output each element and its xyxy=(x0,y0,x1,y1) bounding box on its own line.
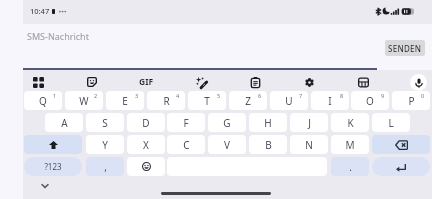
staticText: X xyxy=(143,138,149,152)
staticText: E xyxy=(122,94,128,108)
button[interactable]: A xyxy=(45,113,83,132)
staticText: 3 xyxy=(135,92,139,99)
staticText: C xyxy=(183,138,190,152)
button[interactable]: E xyxy=(106,91,144,110)
button[interactable]: D xyxy=(127,113,165,132)
staticText: 8 xyxy=(340,92,344,99)
button[interactable]: T xyxy=(188,91,226,110)
staticText: 0 xyxy=(421,92,425,99)
staticText: 7 xyxy=(299,92,303,99)
button[interactable]: P xyxy=(392,91,430,110)
staticText: Z xyxy=(245,94,251,108)
staticText: L xyxy=(388,116,394,130)
button[interactable]: AI writing help xyxy=(190,71,212,93)
button[interactable]: K xyxy=(331,113,369,132)
button[interactable]: W xyxy=(65,91,103,110)
staticText: V xyxy=(224,138,230,152)
button[interactable]: Shift xyxy=(24,135,82,154)
staticText: 5 xyxy=(217,92,221,99)
button[interactable]: O xyxy=(351,91,389,110)
button[interactable]: J xyxy=(290,113,328,132)
button[interactable]: Voice input xyxy=(410,74,427,91)
staticText: I xyxy=(328,94,332,108)
button[interactable]: L xyxy=(372,113,410,132)
staticText: A xyxy=(61,116,68,130)
button[interactable]: F xyxy=(167,113,205,132)
staticText: R xyxy=(163,94,170,108)
button[interactable]: Settings xyxy=(298,71,320,93)
staticText: J xyxy=(308,116,311,130)
staticText: D xyxy=(142,116,150,130)
button[interactable]: Comma xyxy=(86,157,124,176)
button[interactable]: Enter xyxy=(372,157,430,176)
staticText: U xyxy=(285,94,293,108)
button[interactable]: Y xyxy=(86,135,124,154)
button[interactable]: N xyxy=(290,135,328,154)
staticText: 9 xyxy=(381,92,385,99)
button[interactable]: X xyxy=(127,135,165,154)
button[interactable]: Period xyxy=(331,157,369,176)
button[interactable]: Backspace xyxy=(372,135,430,154)
staticText: S xyxy=(102,116,108,130)
button[interactable]: C xyxy=(167,135,205,154)
staticText: Y xyxy=(102,138,108,152)
staticText: Q xyxy=(39,94,47,108)
button[interactable]: V xyxy=(208,135,246,154)
staticText: M xyxy=(345,138,355,152)
staticText: H xyxy=(264,116,272,130)
staticText: B xyxy=(265,138,272,152)
button[interactable]: Apps xyxy=(27,71,49,93)
staticText: O xyxy=(366,94,374,108)
button[interactable]: Q xyxy=(24,91,62,110)
button[interactable]: SENDEN xyxy=(385,40,425,56)
staticText: SMS-Nachricht xyxy=(27,30,89,42)
button[interactable]: B xyxy=(249,135,287,154)
button[interactable]: Hide keyboard xyxy=(34,175,56,197)
staticText: , xyxy=(104,160,107,174)
staticText: 10:47 xyxy=(30,6,50,16)
staticText: SENDEN xyxy=(388,43,422,54)
button[interactable]: Resize keyboard xyxy=(352,71,374,93)
staticText: K xyxy=(347,116,354,130)
button[interactable]: S xyxy=(86,113,124,132)
staticText: 2 xyxy=(94,92,98,99)
staticText: G xyxy=(223,116,231,130)
staticText: . xyxy=(349,160,352,174)
button[interactable]: Clipboard xyxy=(244,71,266,93)
button[interactable]: U xyxy=(270,91,308,110)
button[interactable]: G xyxy=(208,113,246,132)
staticText: 4 xyxy=(176,92,180,99)
button[interactable]: M xyxy=(331,135,369,154)
staticText: P xyxy=(408,94,415,108)
button[interactable]: Stickers xyxy=(81,71,103,93)
staticText: F xyxy=(183,116,189,130)
button[interactable]: ?123 xyxy=(24,157,82,176)
button[interactable]: GIF xyxy=(135,71,157,93)
staticText: GIF xyxy=(139,76,154,88)
staticText: ?123 xyxy=(44,161,62,172)
staticText: 1 xyxy=(53,92,57,99)
button[interactable]: I xyxy=(311,91,349,110)
staticText: W xyxy=(79,94,89,108)
button[interactable]: Z xyxy=(229,91,267,110)
button[interactable]: R xyxy=(147,91,185,110)
staticText: T xyxy=(204,94,210,108)
staticText: 6 xyxy=(258,92,262,99)
button[interactable]: H xyxy=(249,113,287,132)
staticText: N xyxy=(305,138,313,152)
button[interactable]: Emoji xyxy=(127,157,165,176)
